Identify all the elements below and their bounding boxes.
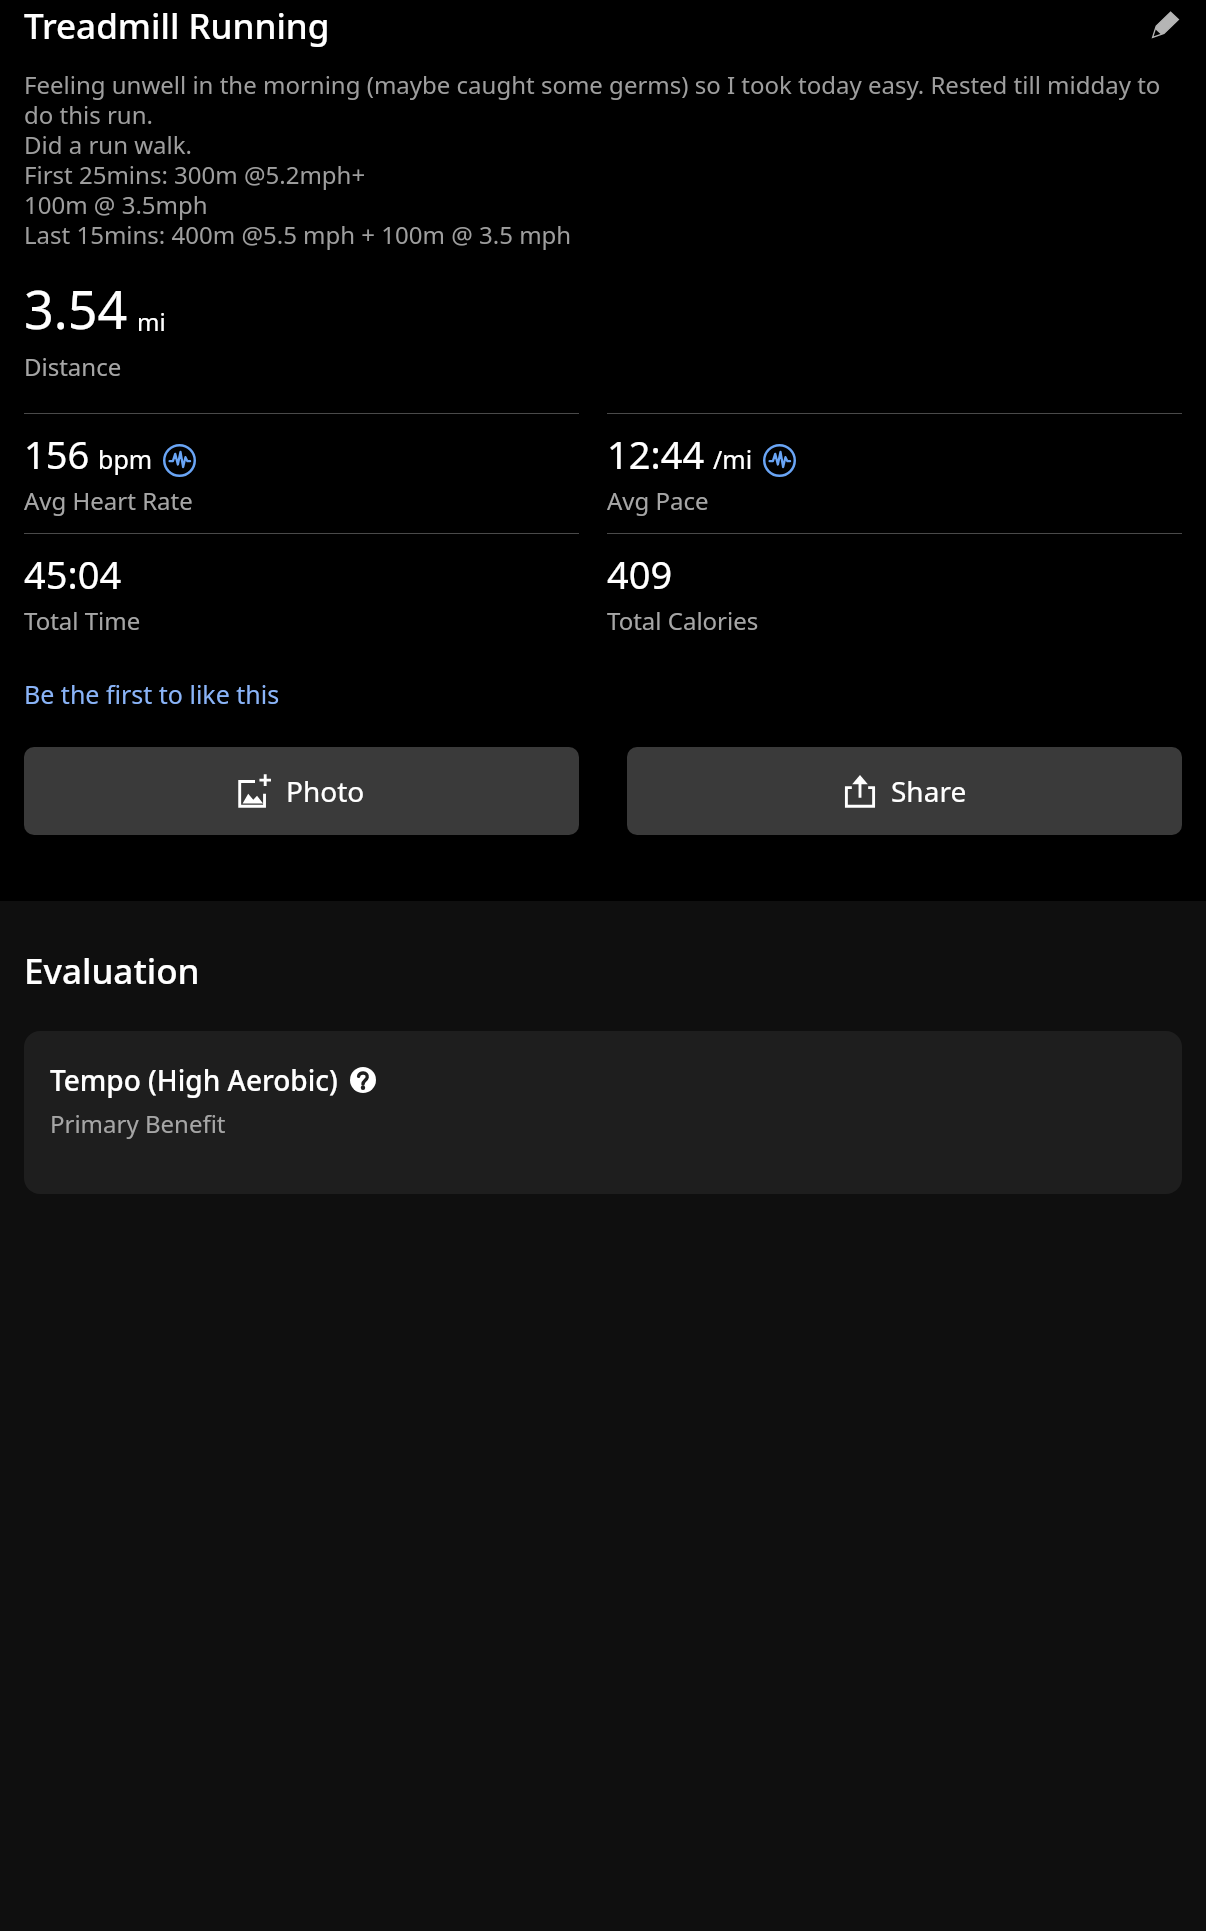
staticText: Total Calories	[607, 604, 759, 637]
button[interactable]: Edit	[1142, 4, 1186, 48]
staticText: /mi	[713, 442, 753, 476]
staticText: Photo	[286, 772, 365, 810]
staticText: Feeling unwell in the morning (maybe cau…	[24, 68, 1182, 251]
staticText: 3.54	[24, 273, 128, 344]
staticText: Primary Benefit	[50, 1107, 226, 1140]
button[interactable]: Be the first to like this	[24, 677, 280, 711]
staticText: Avg Pace	[607, 484, 709, 517]
staticText: Treadmill Running	[24, 2, 330, 50]
button[interactable]: Tempo (High Aerobic)	[24, 1031, 1182, 1194]
staticText: 45:04	[24, 548, 122, 600]
staticText: Distance	[24, 350, 122, 383]
staticText: bpm	[98, 442, 153, 476]
staticText: Be the first to like this	[24, 677, 280, 711]
button[interactable]: Share	[627, 747, 1182, 835]
button[interactable]: Photo	[24, 747, 579, 835]
staticText: Tempo (High Aerobic)	[50, 1061, 338, 1099]
staticText: mi	[137, 305, 166, 338]
staticText: 409	[607, 548, 673, 600]
staticText: Avg Heart Rate	[24, 484, 193, 517]
staticText: 156	[24, 428, 90, 480]
staticText: Evaluation	[24, 947, 200, 995]
staticText: 12:44	[607, 428, 705, 480]
staticText: Share	[891, 772, 967, 810]
staticText: Total Time	[24, 604, 141, 637]
